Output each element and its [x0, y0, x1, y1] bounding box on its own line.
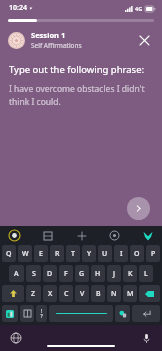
button[interactable]: Q [2, 245, 16, 262]
button[interactable]: Close [134, 30, 154, 50]
staticText: T [71, 249, 75, 259]
staticText: M [127, 289, 134, 299]
staticText: Y [87, 249, 92, 259]
button[interactable]: X [43, 285, 57, 302]
staticText: F [64, 269, 68, 279]
staticText: J [113, 269, 116, 279]
button[interactable]: M [123, 285, 137, 302]
staticText: 10:24 [9, 3, 27, 13]
button[interactable]: V [75, 285, 89, 302]
button[interactable]: Grammarly [141, 229, 154, 242]
button[interactable]: J [107, 265, 121, 282]
button[interactable]: R [50, 245, 64, 262]
staticText: R [55, 249, 60, 259]
button[interactable]: C [59, 285, 73, 302]
button[interactable]: N [107, 285, 121, 302]
staticText: C [64, 289, 69, 299]
staticText: W [22, 249, 29, 259]
staticText: X [48, 289, 53, 299]
staticText: B [96, 289, 101, 299]
staticText: Q [6, 249, 12, 259]
staticText: Session 1 [31, 30, 66, 40]
button[interactable]: Y [82, 245, 96, 262]
button[interactable]: H [91, 265, 105, 282]
button[interactable]: K [123, 265, 137, 282]
button[interactable]: Stickers [41, 229, 54, 242]
button[interactable]: Change language [10, 332, 22, 344]
button[interactable]: Emoji [2, 305, 18, 322]
button[interactable]: Clipboard [75, 229, 88, 242]
staticText: S [32, 269, 36, 279]
staticText: I [120, 249, 123, 259]
button[interactable]: A [9, 265, 24, 282]
staticText: I have overcome obstacles I didn't think… [9, 83, 153, 108]
button[interactable]: Z [26, 285, 41, 302]
button[interactable]: Microphone [140, 332, 152, 344]
button[interactable]: Numbers [20, 305, 34, 322]
staticText: G [79, 269, 85, 279]
button[interactable]: D [43, 265, 57, 282]
button[interactable]: U [98, 245, 112, 262]
button[interactable]: Settings [8, 229, 21, 242]
staticText: E [39, 249, 43, 259]
button[interactable]: S [26, 265, 41, 282]
button[interactable]: L [139, 265, 153, 282]
button[interactable]: P [146, 245, 160, 262]
button[interactable]: Voice typing [108, 229, 121, 242]
button[interactable]: W [18, 245, 32, 262]
staticText: L [144, 269, 148, 279]
staticText: U [102, 249, 108, 259]
button[interactable]: G [75, 265, 89, 282]
button[interactable]: B [91, 285, 105, 302]
staticText: H [95, 269, 101, 279]
staticText: 4G [135, 5, 143, 12]
staticText: P [151, 249, 156, 259]
button[interactable]: I [114, 245, 128, 262]
staticText: K [128, 269, 133, 279]
button[interactable]: ! ? [36, 305, 47, 322]
button[interactable]: Space [49, 305, 113, 322]
staticText: N [111, 289, 117, 299]
staticText: V [80, 289, 85, 299]
staticText: Self Affirmations [31, 41, 82, 50]
button[interactable]: Backspace [139, 285, 160, 302]
button[interactable]: E [34, 245, 48, 262]
staticText: ! ? [40, 308, 43, 319]
button[interactable]: O [130, 245, 144, 262]
staticText: Z [31, 289, 36, 299]
staticText: A [14, 269, 19, 279]
button[interactable]: Voice input [115, 305, 130, 322]
staticText: D [47, 269, 53, 279]
button[interactable]: Shift [2, 285, 24, 302]
button[interactable]: Session 1 [0, 25, 162, 55]
button[interactable]: T [66, 245, 80, 262]
staticText: O [134, 249, 140, 259]
button[interactable]: Enter [132, 305, 160, 322]
button[interactable]: Next [127, 197, 150, 220]
button[interactable]: F [59, 265, 73, 282]
staticText: Type out the following phrase: [9, 63, 145, 76]
